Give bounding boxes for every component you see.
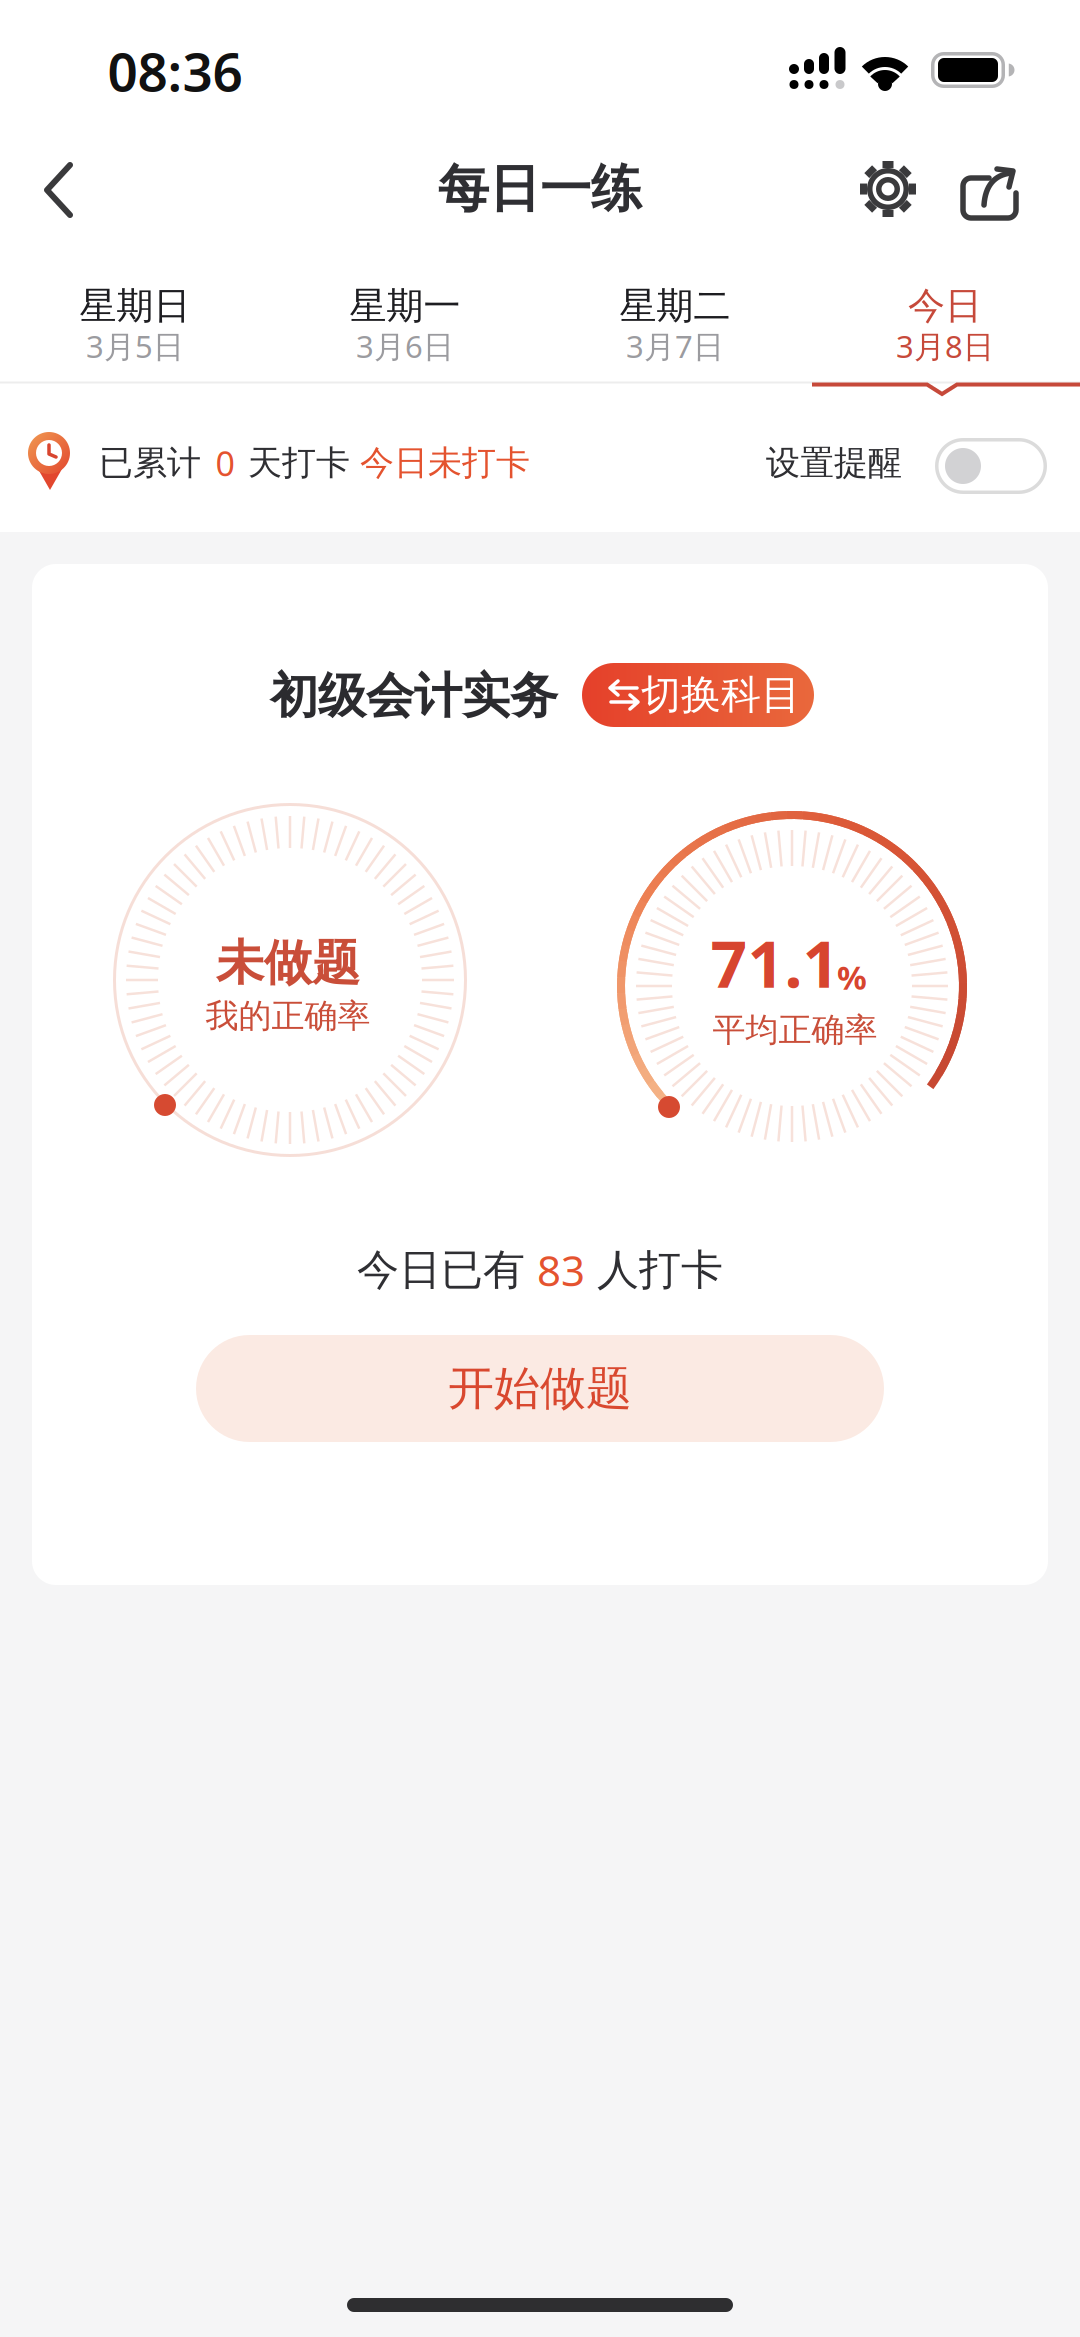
staticText: 今日已有 (357, 1243, 525, 1296)
staticText: 设置提醒 (766, 442, 902, 484)
staticText: 3月5日 (86, 325, 184, 367)
staticText: 天打卡 (248, 442, 350, 484)
staticText: 平均正确率 (712, 1009, 877, 1051)
button[interactable]: 星期日 (1, 252, 269, 380)
staticText: 切换科目 (641, 670, 801, 720)
staticText: 3月7日 (626, 325, 724, 367)
button[interactable] (959, 161, 1021, 221)
button[interactable]: 星期二 (541, 252, 809, 380)
button[interactable] (935, 438, 1047, 494)
staticText: 3月6日 (356, 325, 454, 367)
staticText: 星期日 (79, 283, 190, 329)
staticText: 未做题 (216, 933, 360, 993)
staticText: 71.1 (710, 919, 839, 1007)
button[interactable]: 今日 (811, 252, 1079, 380)
staticText: 开始做题 (448, 1359, 632, 1417)
button[interactable]: 开始做题 (196, 1335, 884, 1442)
staticText: 今日未打卡 (360, 442, 530, 484)
staticText: 星期二 (619, 283, 730, 329)
staticText: 今日 (908, 283, 982, 329)
staticText: 我的正确率 (205, 995, 370, 1037)
staticText: 0 (215, 440, 234, 486)
button[interactable]: 切换科目 (582, 663, 814, 727)
button[interactable]: 星期一 (271, 252, 539, 380)
staticText: 星期一 (349, 283, 460, 329)
staticText: 人打卡 (597, 1243, 723, 1296)
staticText: 83 (537, 1241, 585, 1299)
staticText: % (837, 954, 867, 999)
button[interactable] (856, 157, 920, 221)
staticText: 每日一练 (438, 157, 642, 221)
staticText: 08:36 (107, 35, 242, 107)
button[interactable] (44, 163, 74, 217)
staticText: 3月8日 (896, 325, 994, 367)
staticText: 已累计 (99, 442, 201, 484)
staticText: 初级会计实务 (270, 666, 558, 726)
